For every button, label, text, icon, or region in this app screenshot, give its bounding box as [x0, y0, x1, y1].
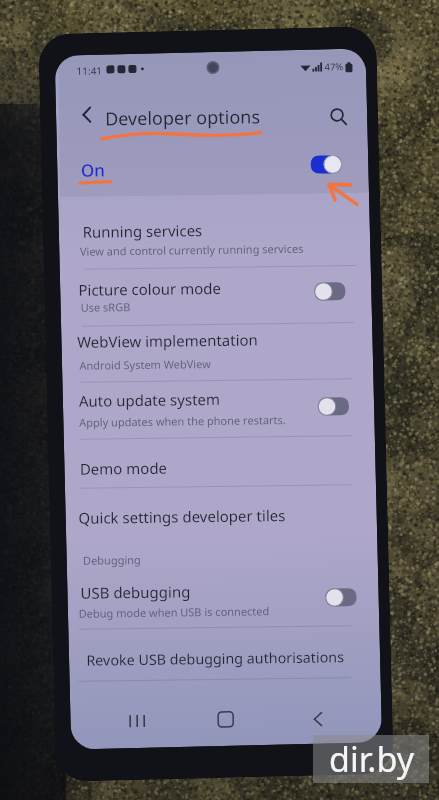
button[interactable]: USB debugging: [68, 568, 349, 622]
staticText: Use sRGB: [80, 299, 131, 315]
button[interactable]: Toggle Picture colour mode: [314, 282, 346, 301]
staticText: USB debugging: [80, 580, 191, 604]
button[interactable]: Toggle Auto update system: [318, 397, 349, 416]
staticText: Picture colour mode: [78, 276, 222, 301]
staticText: Debugging: [83, 551, 141, 568]
staticText: Demo mode: [79, 457, 168, 480]
button[interactable]: Running services: [70, 207, 351, 261]
staticText: Debug mode when USB is connected: [78, 601, 270, 623]
staticText: Developer options: [105, 103, 260, 133]
button[interactable]: Search: [321, 100, 355, 133]
button[interactable]: WebView implementation: [64, 317, 346, 371]
staticText: Android System WebView: [79, 355, 212, 374]
button[interactable]: Recents: [120, 711, 156, 731]
staticText: On: [80, 158, 105, 182]
button[interactable]: Auto update system: [66, 376, 348, 430]
button[interactable]: Demo mode: [67, 444, 348, 486]
staticText: Running services: [82, 219, 203, 243]
button[interactable]: Picture colour mode: [66, 265, 347, 319]
button[interactable]: Home: [210, 708, 240, 729]
staticText: 47%: [324, 60, 344, 74]
button[interactable]: Back: [305, 708, 329, 729]
button[interactable]: Revoke USB debugging authorisations: [74, 636, 355, 678]
button[interactable]: On: [67, 143, 363, 193]
staticText: 11:41: [76, 63, 103, 78]
staticText: Apply updates when the phone restarts.: [79, 410, 286, 432]
button[interactable]: Quick settings developer tiles: [66, 493, 347, 535]
staticText: Auto update system: [78, 387, 221, 412]
staticText: View and control currently running servi…: [80, 238, 304, 261]
button[interactable]: Back: [70, 98, 104, 131]
staticText: WebView implementation: [77, 327, 258, 354]
staticText: Revoke USB debugging authorisations: [86, 645, 345, 672]
staticText: Quick settings developer tiles: [78, 503, 286, 530]
staticText: dir.by: [329, 736, 414, 782]
button[interactable]: Toggle USB debugging: [325, 588, 357, 607]
